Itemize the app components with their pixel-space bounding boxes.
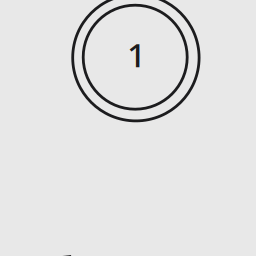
staticText: 1 (127, 32, 146, 76)
button[interactable]: Step 1 (73, 0, 199, 121)
